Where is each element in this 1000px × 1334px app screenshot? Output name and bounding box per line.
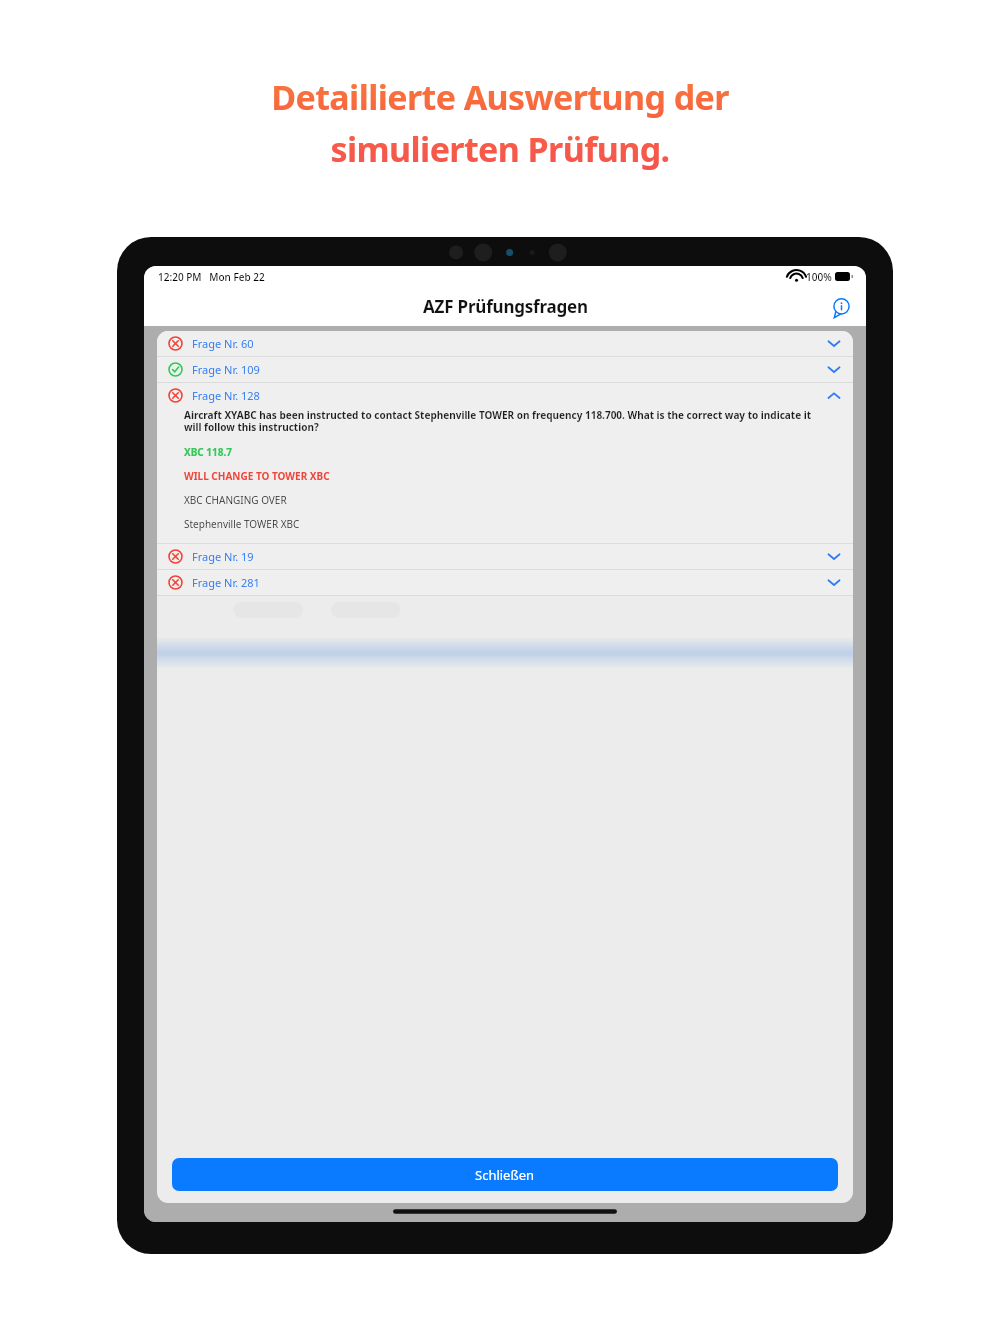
staticText: Frage Nr. 128 — [192, 388, 260, 403]
button[interactable]: Schließen — [172, 1158, 838, 1191]
button[interactable]: Frage Nr. 19 — [157, 544, 853, 569]
staticText: Frage Nr. 109 — [192, 362, 260, 377]
staticText: Stephenville TOWER XBC — [184, 517, 300, 531]
staticText: Schließen — [475, 1166, 535, 1184]
staticText: XBC 118.7 — [184, 445, 233, 459]
staticText: 12:20 PM Mon Feb 22 — [158, 270, 265, 284]
staticText: WILL CHANGE TO TOWER XBC — [184, 469, 330, 483]
staticText: Frage Nr. 19 — [192, 549, 254, 564]
staticText: Frage Nr. 281 — [192, 575, 260, 590]
button[interactable]: Frage Nr. 60 — [157, 331, 853, 356]
staticText: Aircraft XYABC has been instructed to co… — [184, 408, 829, 434]
staticText: AZF Prüfungsfragen — [423, 295, 588, 318]
staticText: simulierten Prüfung. — [330, 126, 670, 172]
staticText: Detaillierte Auswertung der — [271, 74, 729, 120]
button[interactable]: Frage Nr. 109 — [157, 357, 853, 382]
staticText: XBC CHANGING OVER — [184, 493, 287, 507]
staticText: 100% — [806, 270, 832, 284]
button[interactable]: Frage Nr. 128 — [157, 383, 853, 408]
button[interactable]: Frage Nr. 281 — [157, 570, 853, 595]
staticText: Frage Nr. 60 — [192, 336, 254, 351]
button[interactable]: Info — [828, 294, 854, 320]
